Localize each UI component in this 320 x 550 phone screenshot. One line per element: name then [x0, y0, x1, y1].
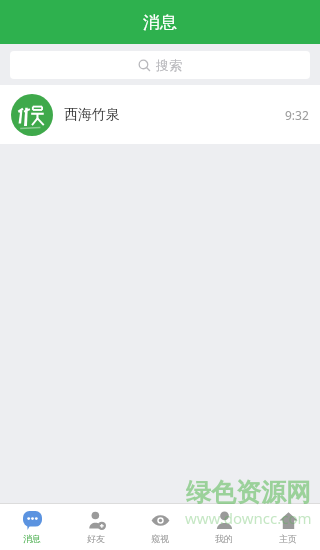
staticText: 窥视: [151, 533, 169, 544]
staticText: 消息: [143, 12, 177, 33]
button[interactable]: 搜索: [10, 51, 310, 79]
staticText: 主页: [279, 533, 297, 544]
button[interactable]: 消息: [0, 504, 64, 550]
button[interactable]: 西海竹泉: [0, 85, 320, 144]
button[interactable]: 窥视: [128, 504, 192, 550]
button[interactable]: 主页: [256, 504, 320, 550]
staticText: 绿色资源网: [186, 477, 311, 508]
staticText: 西海竹泉: [64, 106, 120, 124]
staticText: 搜索: [156, 57, 182, 73]
button[interactable]: 好友: [64, 504, 128, 550]
button[interactable]: 我的: [192, 504, 256, 550]
staticText: 我的: [215, 533, 233, 544]
staticText: 9:32: [285, 107, 309, 123]
staticText: 好友: [87, 533, 105, 544]
staticText: www.downcc.com: [185, 508, 312, 528]
staticText: 消息: [23, 533, 41, 544]
